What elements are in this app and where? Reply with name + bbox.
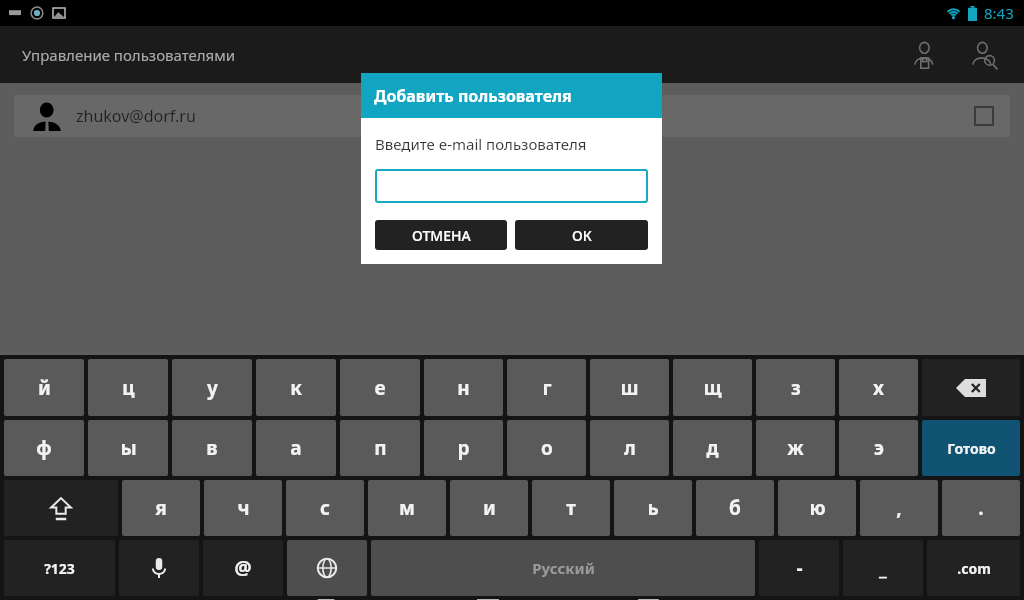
- staticText: _: [879, 555, 887, 581]
- button[interactable]: globe: [287, 540, 367, 596]
- button[interactable]: г: [507, 359, 586, 416]
- button[interactable]: zhukov@dorf.ru: [14, 95, 1010, 137]
- button[interactable]: с: [286, 480, 364, 536]
- button[interactable]: о: [507, 420, 586, 476]
- button[interactable]: ж: [756, 420, 835, 476]
- button[interactable]: р: [424, 420, 503, 476]
- button[interactable]: ,: [860, 480, 938, 536]
- staticText: Введите e-mail пользователя: [375, 134, 587, 154]
- staticText: р: [457, 435, 470, 461]
- staticText: о: [541, 435, 553, 461]
- staticText: с: [320, 495, 330, 521]
- button[interactable]: backspace: [922, 359, 1020, 416]
- staticText: л: [624, 435, 636, 461]
- button[interactable]: а: [256, 420, 336, 476]
- button[interactable]: к: [256, 359, 336, 416]
- button[interactable]: м: [368, 480, 446, 536]
- staticText: ОК: [572, 226, 592, 245]
- staticText: ш: [620, 375, 639, 401]
- staticText: э: [874, 435, 884, 461]
- button[interactable]: ф: [4, 420, 84, 476]
- button[interactable]: mic: [119, 540, 199, 596]
- staticText: Добавить пользователя: [374, 85, 572, 107]
- button[interactable]: Email input: [375, 169, 648, 203]
- staticText: ы: [120, 435, 137, 461]
- button[interactable]: ь: [614, 480, 692, 536]
- button[interactable]: э: [839, 420, 918, 476]
- staticText: ц: [122, 375, 135, 401]
- button[interactable]: з: [756, 359, 835, 416]
- staticText: к: [290, 375, 302, 401]
- button[interactable]: ш: [590, 359, 669, 416]
- button[interactable]: у: [172, 359, 252, 416]
- button[interactable]: б: [696, 480, 774, 536]
- staticText: щ: [703, 375, 722, 401]
- button[interactable]: ОТМЕНА: [375, 220, 507, 250]
- button[interactable]: .: [942, 480, 1020, 536]
- button[interactable]: ОК: [515, 220, 648, 250]
- staticText: и: [483, 495, 496, 521]
- staticText: ч: [237, 495, 250, 521]
- button[interactable]: в: [172, 420, 252, 476]
- staticText: 8:43: [984, 3, 1014, 23]
- button[interactable]: Search user: [966, 35, 1006, 75]
- staticText: Управление пользователями: [22, 45, 236, 65]
- button[interactable]: Русский: [371, 540, 755, 596]
- button[interactable]: @: [203, 540, 283, 596]
- button[interactable]: ы: [88, 420, 168, 476]
- staticText: п: [374, 435, 387, 461]
- button[interactable]: н: [424, 359, 503, 416]
- button[interactable]: ч: [204, 480, 282, 536]
- button[interactable]: е: [340, 359, 420, 416]
- staticText: т: [566, 495, 576, 521]
- staticText: ?123: [44, 559, 75, 578]
- button[interactable]: ?123: [4, 540, 115, 596]
- button[interactable]: й: [4, 359, 84, 416]
- button[interactable]: х: [839, 359, 918, 416]
- button[interactable]: shift: [4, 480, 118, 536]
- staticText: Русский: [532, 558, 595, 578]
- staticText: Готово: [947, 439, 996, 458]
- button[interactable]: -: [759, 540, 839, 596]
- button[interactable]: п: [340, 420, 420, 476]
- button[interactable]: я: [122, 480, 200, 536]
- button[interactable]: ц: [88, 359, 168, 416]
- staticText: у: [207, 375, 218, 401]
- staticText: ОТМЕНА: [412, 226, 471, 245]
- staticText: ф: [36, 435, 52, 461]
- staticText: а: [290, 435, 302, 461]
- staticText: ж: [787, 435, 804, 461]
- staticText: м: [399, 495, 415, 521]
- button[interactable]: .com: [927, 540, 1020, 596]
- staticText: б: [729, 495, 741, 521]
- staticText: @: [234, 555, 252, 581]
- staticText: .com: [957, 559, 991, 578]
- staticText: х: [873, 375, 884, 401]
- staticText: г: [542, 375, 552, 401]
- staticText: е: [374, 375, 386, 401]
- staticText: ь: [647, 495, 659, 521]
- staticText: ,: [896, 495, 902, 521]
- staticText: zhukov@dorf.ru: [76, 105, 196, 127]
- button[interactable]: щ: [673, 359, 752, 416]
- staticText: н: [457, 375, 470, 401]
- staticText: в: [206, 435, 218, 461]
- staticText: д: [706, 435, 719, 461]
- button[interactable]: ю: [778, 480, 856, 536]
- button[interactable]: д: [673, 420, 752, 476]
- button[interactable]: Готово: [922, 420, 1020, 476]
- staticText: з: [791, 375, 801, 401]
- staticText: й: [38, 375, 51, 401]
- button[interactable]: и: [450, 480, 528, 536]
- staticText: я: [155, 495, 167, 521]
- staticText: -: [796, 555, 803, 581]
- button[interactable]: _: [843, 540, 923, 596]
- button[interactable]: Select user: [974, 106, 994, 126]
- button[interactable]: т: [532, 480, 610, 536]
- staticText: .: [978, 495, 984, 521]
- staticText: ю: [809, 495, 826, 521]
- button[interactable]: л: [590, 420, 669, 476]
- button[interactable]: Save user: [908, 35, 948, 75]
